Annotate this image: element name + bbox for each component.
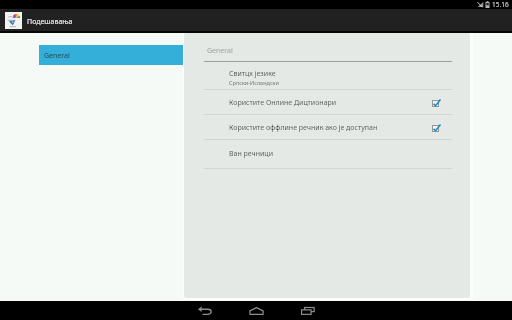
staticText: Свитцх језике bbox=[229, 69, 276, 79]
button[interactable]: Свитцх језике bbox=[184, 62, 470, 89]
button[interactable]: General bbox=[39, 45, 183, 65]
staticText: Користите Онлине Дицтионари bbox=[229, 98, 432, 108]
button[interactable]: Користите Онлине Дицтионари bbox=[184, 90, 470, 114]
staticText: Подешавања bbox=[27, 17, 73, 27]
button[interactable]: Ван речници bbox=[184, 140, 470, 168]
button[interactable]: Home bbox=[244, 301, 268, 320]
button[interactable]: Back bbox=[193, 301, 217, 320]
staticText: General bbox=[207, 46, 233, 56]
staticText: Српски-Исландски bbox=[229, 79, 279, 86]
button[interactable]: Користите оффлине речник ако је доступан bbox=[184, 115, 470, 139]
staticText: General bbox=[44, 51, 70, 61]
button[interactable]: Recent apps bbox=[296, 301, 320, 320]
staticText: Користите оффлине речник ако је доступан bbox=[229, 123, 432, 133]
staticText: 15.16 bbox=[492, 0, 509, 9]
staticText: Ван речници bbox=[229, 149, 274, 159]
